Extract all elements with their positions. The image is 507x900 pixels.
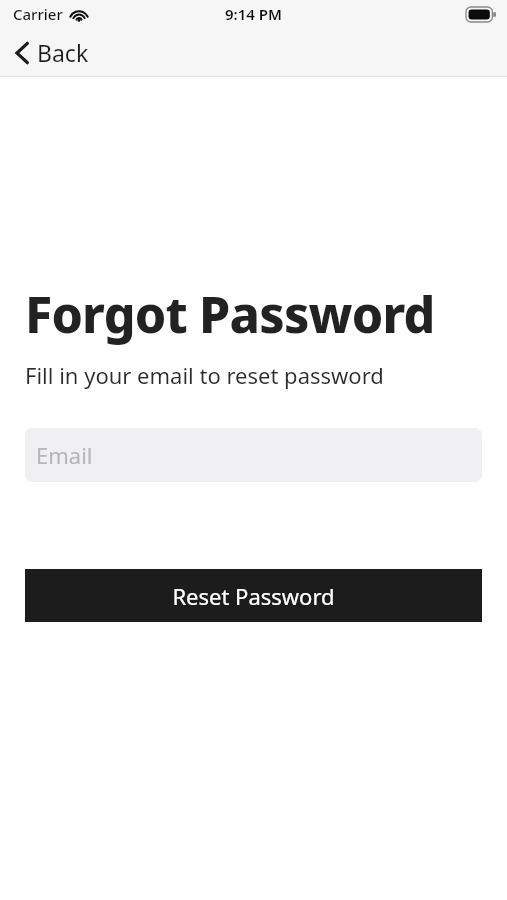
other: Wi-Fi: [69, 7, 89, 22]
staticText: Reset Password: [172, 581, 335, 611]
staticText: Forgot Password: [25, 280, 435, 348]
button[interactable]: Back: [0, 28, 103, 77]
staticText: 9:14 PM: [225, 4, 282, 24]
staticText: Carrier: [13, 4, 63, 24]
staticText: Email: [36, 440, 93, 470]
button[interactable]: Reset Password: [25, 569, 482, 622]
staticText: Fill in your email to reset password: [25, 360, 384, 390]
staticText: Back: [37, 37, 89, 68]
other: Battery: [466, 7, 496, 22]
button[interactable]: Email: [25, 428, 482, 482]
